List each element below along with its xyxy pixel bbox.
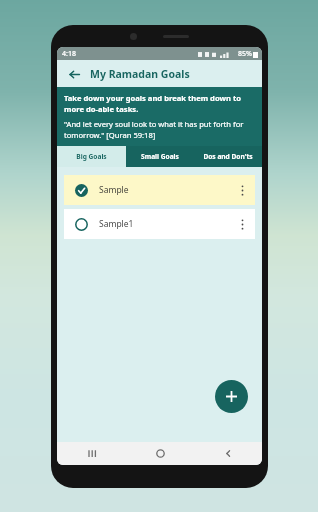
staticText: Sample1 <box>99 218 134 230</box>
button[interactable]: Recents <box>57 442 126 465</box>
staticText: Big Goals <box>76 152 107 161</box>
button[interactable]: Dos and Don'ts <box>194 146 262 167</box>
button[interactable]: Home <box>126 442 194 465</box>
button[interactable]: Add goal <box>215 380 248 413</box>
button[interactable]: Not completed <box>64 209 255 239</box>
staticText: Small Goals <box>141 152 179 161</box>
button[interactable]: Back <box>65 65 83 83</box>
button[interactable]: Big Goals <box>57 146 126 167</box>
staticText: 4:18 <box>62 49 76 59</box>
button[interactable]: Small Goals <box>126 146 194 167</box>
staticText: My Ramadan Goals <box>90 67 190 81</box>
button[interactable]: More options <box>233 175 251 205</box>
staticText: 85% <box>238 49 252 59</box>
button[interactable]: Completed <box>64 175 255 205</box>
staticText: Dos and Don'ts <box>203 152 253 161</box>
staticText: "And let every soul look to what it has … <box>64 119 255 140</box>
button[interactable]: Back <box>194 442 262 465</box>
button[interactable]: Not completed <box>73 216 89 232</box>
button[interactable]: More options <box>233 209 251 239</box>
staticText: Take down your goals and break them down… <box>64 93 255 114</box>
button[interactable]: Completed <box>73 182 89 198</box>
staticText: Sample <box>99 184 129 196</box>
